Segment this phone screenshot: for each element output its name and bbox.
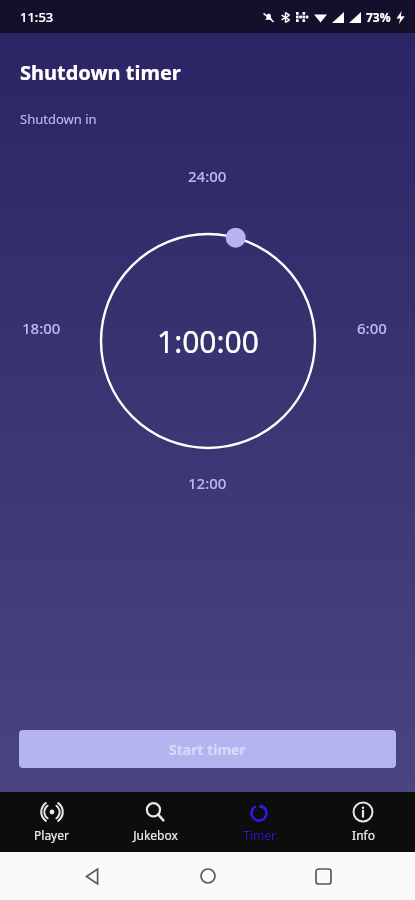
button[interactable]: Start timer (19, 730, 396, 768)
staticText: 73% (366, 9, 391, 25)
button[interactable]: Home (184, 852, 232, 900)
staticText: 12:00 (188, 473, 227, 493)
button[interactable]: Info (311, 792, 415, 852)
staticText: Shutdown timer (20, 59, 181, 86)
staticText: 18:00 (22, 318, 61, 338)
staticText: 1:00:00 (157, 321, 259, 362)
staticText: 24:00 (188, 166, 227, 186)
staticText: Start timer (169, 740, 246, 759)
button[interactable]: Jukebox (103, 792, 207, 852)
button[interactable]: Back (68, 852, 116, 900)
staticText: Info (352, 827, 375, 843)
staticText: Jukebox (133, 827, 178, 843)
button[interactable]: Timer (207, 792, 311, 852)
staticText: Player (34, 827, 69, 843)
button[interactable]: Timer dial (91, 224, 325, 458)
button[interactable]: Recents (299, 852, 347, 900)
button[interactable]: Player (0, 792, 103, 852)
staticText: 11:53 (20, 8, 54, 26)
staticText: 6:00 (357, 318, 387, 338)
staticText: Shutdown in (20, 110, 97, 128)
staticText: Timer (243, 827, 276, 843)
